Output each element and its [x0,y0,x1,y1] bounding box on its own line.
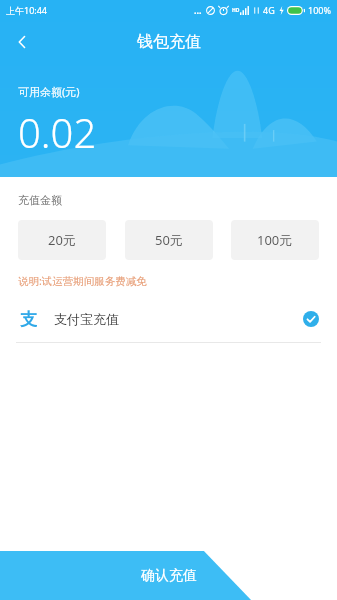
staticText: ... [194,4,202,16]
staticText: 支 [20,309,37,329]
staticText: HD [232,7,240,14]
staticText: 确认充值 [141,567,197,585]
button[interactable]: 支 [0,301,337,337]
button[interactable]: 20元 [18,220,106,260]
staticText: 钱包充值 [137,32,201,52]
button[interactable]: 确认充值 [0,551,337,600]
staticText: 100% [308,4,331,16]
staticText: 支付宝充值 [54,311,119,327]
button[interactable]: 50元 [125,220,213,260]
staticText: 100元 [257,231,293,249]
staticText: 充值金额 [18,193,62,207]
staticText: 20元 [48,231,76,249]
staticText: 上午10:44 [6,4,48,16]
staticText: 50元 [155,231,183,249]
staticText: 0.02 [18,105,97,159]
button[interactable]: 100元 [231,220,319,260]
button[interactable]: Back [0,24,44,60]
staticText: 可用余额(元) [18,84,80,99]
staticText: 说明:试运营期间服务费减免 [18,274,147,288]
staticText: 4G [263,4,275,16]
